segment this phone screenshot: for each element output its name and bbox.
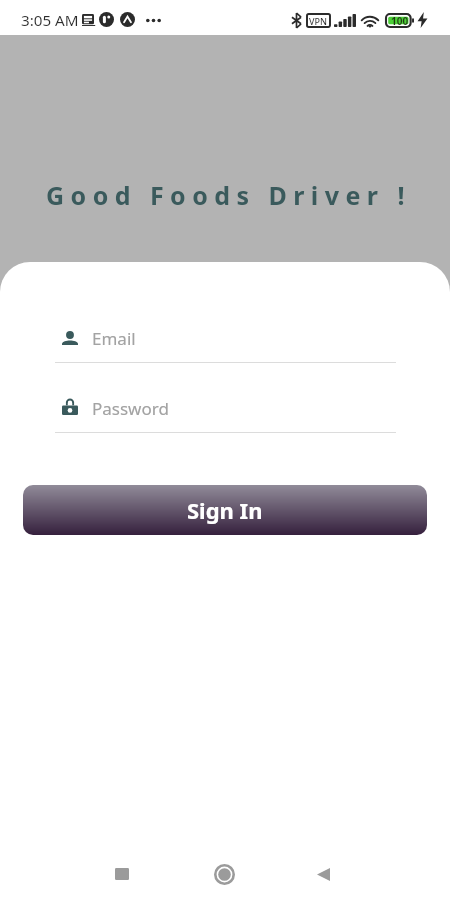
button[interactable]: Password: [55, 388, 396, 433]
staticText: Sign In: [187, 495, 263, 525]
staticText: 3:05 AM: [21, 10, 79, 31]
staticText: Email: [92, 327, 136, 350]
staticText: VPN: [309, 15, 328, 27]
staticText: Password: [92, 397, 169, 420]
button[interactable]: Back: [298, 849, 348, 899]
staticText: Good Foods Driver !: [46, 178, 411, 212]
button[interactable]: Home: [199, 849, 249, 899]
button[interactable]: Recent apps: [97, 849, 147, 899]
button[interactable]: Email: [55, 318, 396, 363]
button[interactable]: Sign In: [23, 485, 427, 535]
staticText: 100: [391, 14, 409, 27]
